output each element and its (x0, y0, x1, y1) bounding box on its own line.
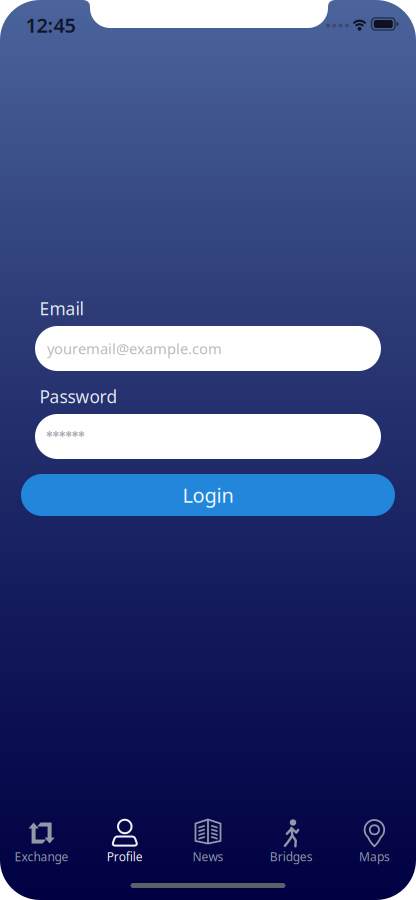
button[interactable]: Login (21, 474, 395, 516)
staticText: Exchange (15, 848, 69, 864)
button[interactable]: Profile (83, 803, 166, 865)
button[interactable]: Maps (333, 803, 416, 865)
button[interactable]: Email (35, 326, 381, 371)
button[interactable]: Exchange (0, 803, 83, 865)
staticText: Profile (107, 848, 143, 864)
staticText: 12:45 (25, 12, 75, 38)
staticText: Password (39, 385, 117, 408)
staticText: Email (39, 297, 83, 320)
button[interactable]: Password (35, 414, 381, 459)
button[interactable]: Bridges (250, 803, 333, 865)
staticText: Login (182, 482, 233, 508)
staticText: Maps (359, 848, 390, 864)
button[interactable]: News (166, 803, 249, 865)
staticText: youremail@example.com (47, 339, 222, 358)
staticText: News (192, 848, 223, 864)
staticText: Bridges (270, 848, 313, 864)
